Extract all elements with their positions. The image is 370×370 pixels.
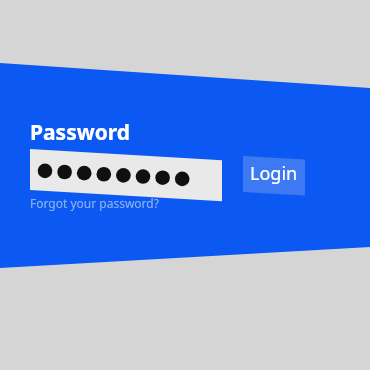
button[interactable]: Forgot your password? xyxy=(30,193,162,213)
button[interactable]: Password input field xyxy=(30,149,222,190)
button[interactable]: Login xyxy=(243,156,305,192)
